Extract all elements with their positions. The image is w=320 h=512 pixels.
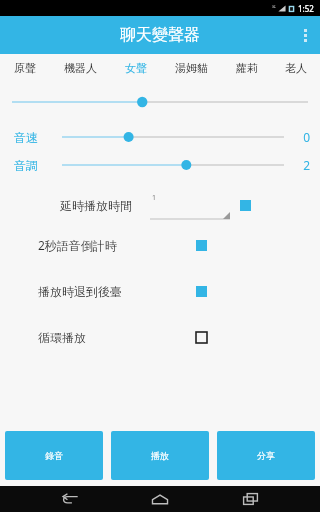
button[interactable]: 老人 <box>271 54 320 82</box>
staticText: 0 <box>294 129 310 145</box>
button[interactable]: More options <box>290 16 320 54</box>
staticText: 2秒語音倒計時 <box>38 237 117 253</box>
staticText: 女聲 <box>125 61 147 75</box>
staticText: 1:52 <box>298 3 314 14</box>
staticText: 聊天變聲器 <box>120 25 200 45</box>
staticText: 播放時退到後臺 <box>38 284 122 299</box>
staticText: 音速 <box>14 130 58 145</box>
staticText: 音調 <box>14 158 58 173</box>
button[interactable]: 原聲 <box>0 54 49 82</box>
staticText: 錄音 <box>45 450 63 461</box>
button[interactable]: Recents <box>230 486 270 512</box>
button[interactable]: 2秒語音倒計時 <box>0 236 320 254</box>
button[interactable]: Home <box>140 486 180 512</box>
staticText: 老人 <box>285 61 307 75</box>
staticText: 2 <box>294 157 310 173</box>
staticText: 循環播放 <box>38 330 86 345</box>
button[interactable]: 播放 <box>111 431 209 480</box>
button[interactable]: 女聲 <box>111 54 160 82</box>
staticText: 1 <box>152 193 157 203</box>
staticText: 延時播放時間 <box>60 198 132 213</box>
staticText: 分享 <box>257 450 275 461</box>
button[interactable]: 蘿莉 <box>222 54 271 82</box>
button[interactable]: 音速 <box>14 126 310 148</box>
staticText: ³⁶ <box>272 5 276 12</box>
button[interactable]: 循環播放 <box>0 328 320 346</box>
button[interactable]: 分享 <box>217 431 315 480</box>
button[interactable]: 機器人 <box>49 54 111 82</box>
staticText: 湯姆貓 <box>175 61 208 75</box>
staticText: 蘿莉 <box>236 61 258 75</box>
button[interactable]: 音調 <box>14 154 310 176</box>
button[interactable]: Delay seconds spinner <box>150 190 230 220</box>
button[interactable]: 湯姆貓 <box>160 54 222 82</box>
button[interactable]: 播放時退到後臺 <box>0 282 320 300</box>
staticText: 播放 <box>151 450 169 461</box>
staticText: 原聲 <box>14 61 36 75</box>
button[interactable]: 錄音 <box>5 431 103 480</box>
staticText: 機器人 <box>64 61 97 75</box>
button[interactable]: Volume slider <box>12 92 308 112</box>
button[interactable]: Back <box>50 486 90 512</box>
